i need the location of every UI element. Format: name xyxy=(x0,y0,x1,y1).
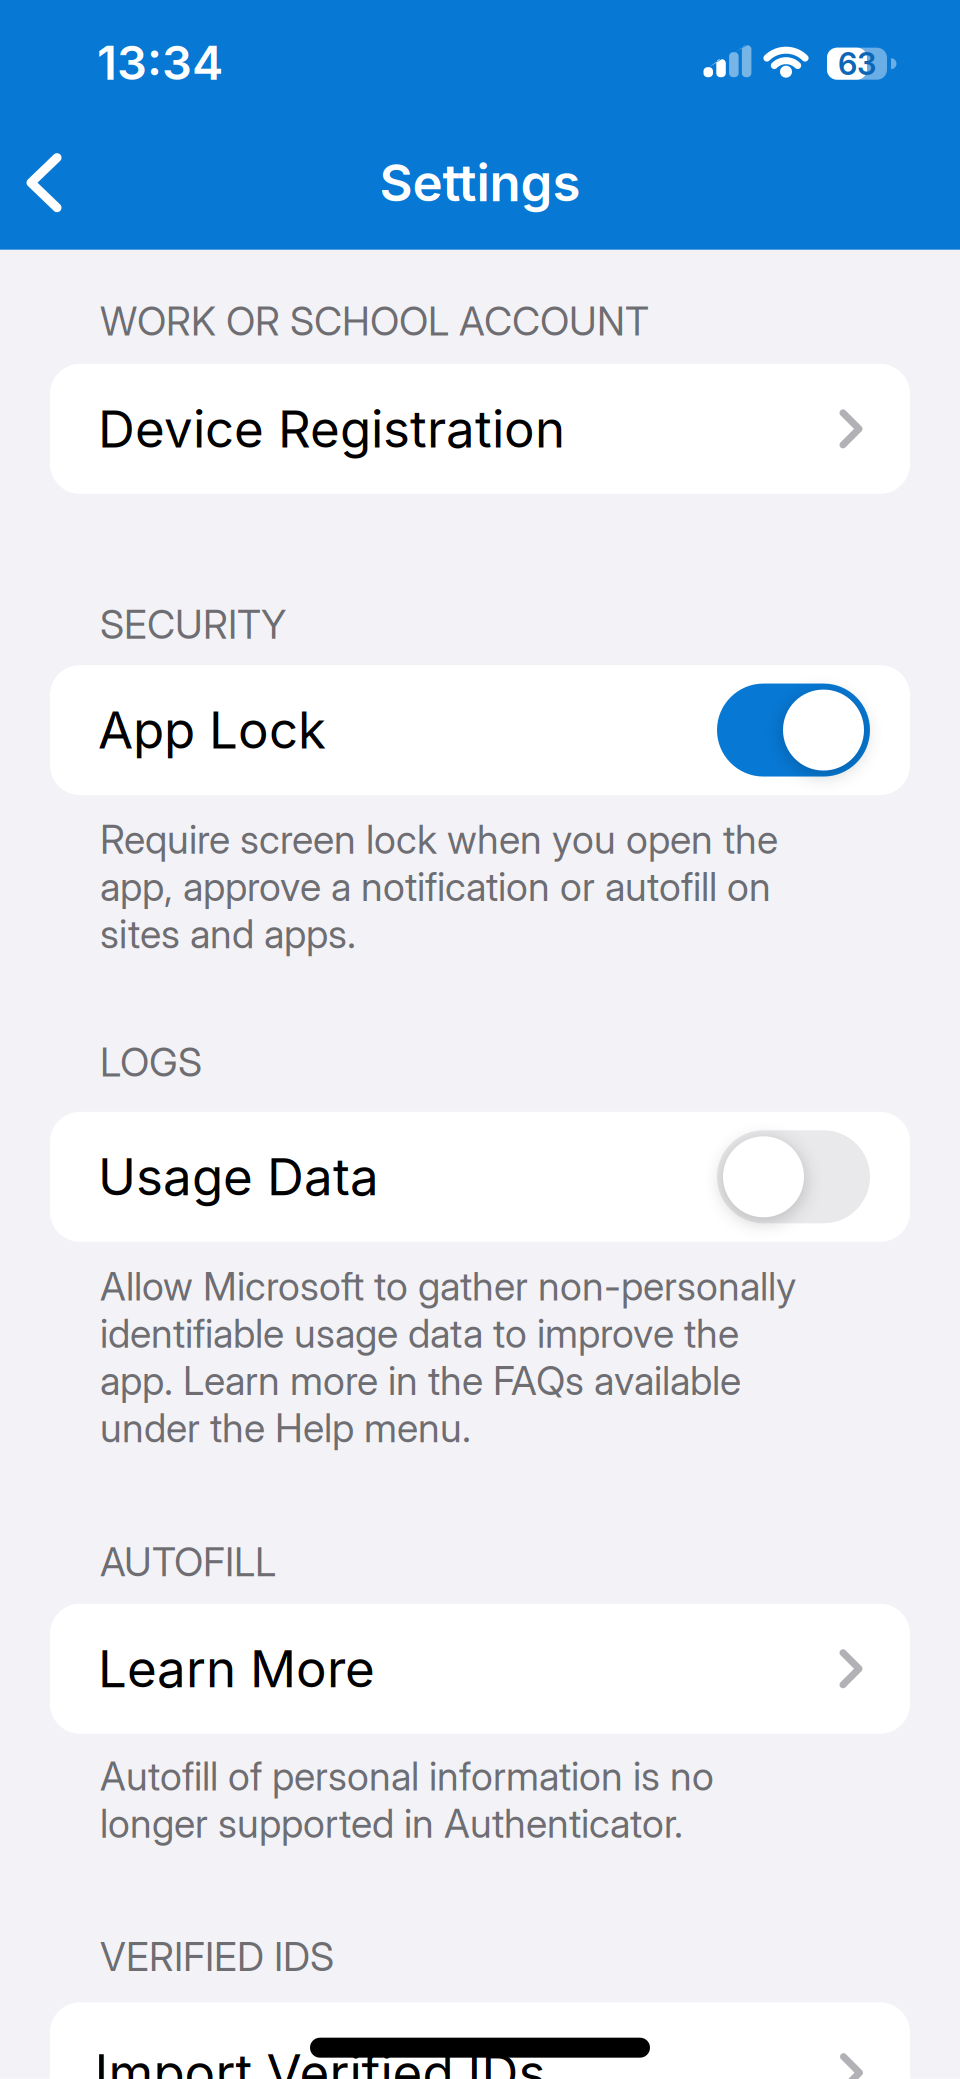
button[interactable]: Import Verified IDs xyxy=(94,2041,863,2079)
staticText: Settings xyxy=(379,152,580,213)
staticText: Allow Microsoft to gather non-personally… xyxy=(100,1263,796,1452)
staticText: WORK OR SCHOOL ACCOUNT xyxy=(100,298,649,345)
staticText: Device Registration xyxy=(98,398,565,460)
staticText: SECURITY xyxy=(100,601,286,648)
staticText: Usage Data xyxy=(98,1146,379,1208)
staticText: Autofill of personal information is no l… xyxy=(100,1753,714,1847)
staticText: Import Verified IDs xyxy=(94,2042,545,2079)
button[interactable] xyxy=(50,2002,910,2079)
button[interactable]: Learn More xyxy=(50,1604,910,1734)
staticText: Learn More xyxy=(98,1638,375,1700)
staticText: LOGS xyxy=(100,1039,202,1086)
button[interactable]: Usage Data xyxy=(50,1112,910,1242)
button[interactable]: App Lock xyxy=(50,665,910,795)
button[interactable]: Device Registration xyxy=(50,364,910,494)
staticText: 63 xyxy=(838,45,876,82)
staticText: App Lock xyxy=(98,699,326,761)
staticText: Require screen lock when you open the ap… xyxy=(100,816,778,958)
button[interactable] xyxy=(13,150,79,216)
staticText: 13:34 xyxy=(97,34,223,91)
staticText: AUTOFILL xyxy=(100,1539,276,1586)
staticText: VERIFIED IDS xyxy=(100,1933,334,1980)
